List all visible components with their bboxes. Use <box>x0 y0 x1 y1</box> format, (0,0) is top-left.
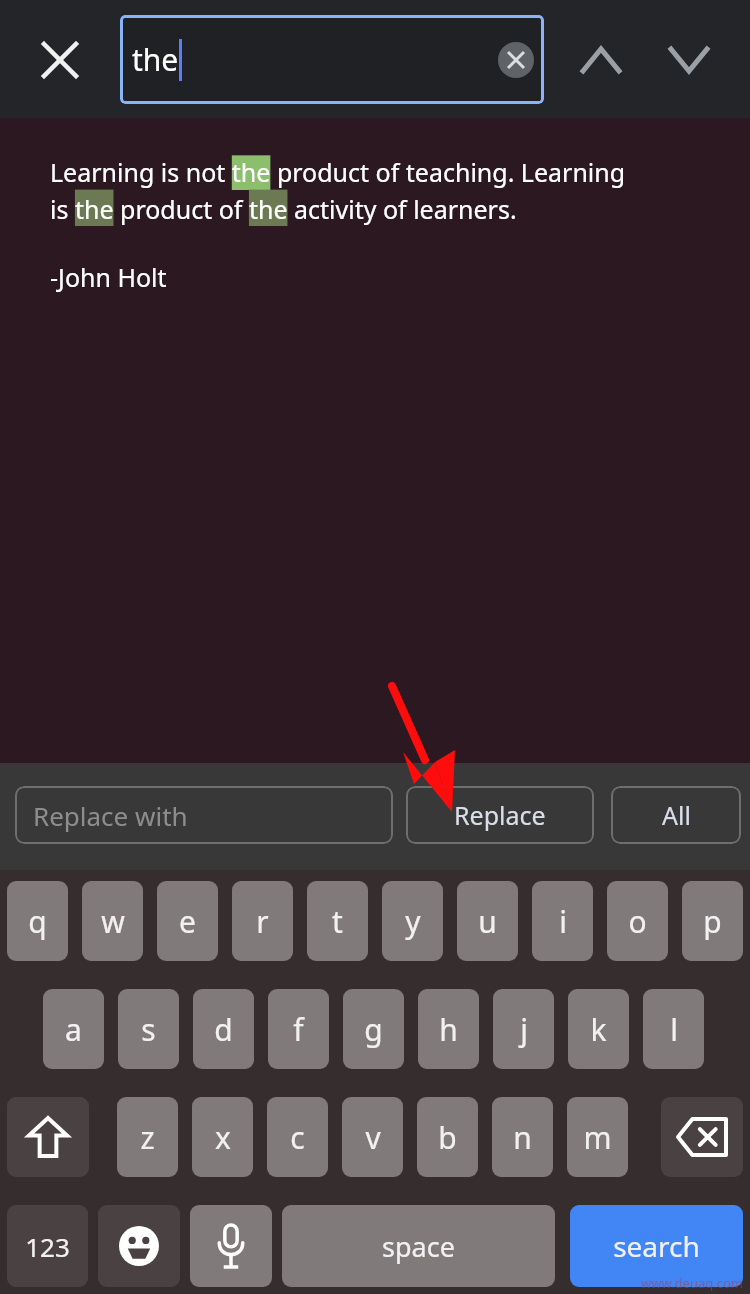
button[interactable]: j <box>493 989 554 1069</box>
staticText: l <box>670 1009 678 1050</box>
staticText: s <box>141 1009 156 1050</box>
button[interactable]: d <box>193 989 254 1069</box>
button[interactable]: Voice input <box>190 1205 272 1287</box>
button[interactable]: Previous match <box>571 30 631 90</box>
button[interactable]: q <box>7 881 68 961</box>
button[interactable]: m <box>567 1097 628 1177</box>
button[interactable]: p <box>682 881 743 961</box>
staticText: a <box>65 1009 82 1050</box>
staticText: r <box>256 901 269 942</box>
staticText: 123 <box>25 1229 70 1264</box>
button[interactable]: x <box>192 1097 253 1177</box>
staticText: All <box>662 798 691 832</box>
staticText: search <box>613 1227 700 1265</box>
staticText: v <box>365 1117 381 1158</box>
button[interactable]: u <box>457 881 518 961</box>
button[interactable]: i <box>532 881 593 961</box>
staticText: j <box>520 1009 528 1050</box>
button[interactable]: Emoji <box>98 1205 180 1287</box>
button[interactable]: o <box>607 881 668 961</box>
button[interactable]: h <box>418 989 479 1069</box>
button[interactable]: c <box>267 1097 328 1177</box>
staticText: d <box>214 1009 233 1050</box>
button[interactable]: v <box>342 1097 403 1177</box>
staticText: i <box>559 901 567 942</box>
button[interactable]: the <box>120 15 544 104</box>
button[interactable]: Next match <box>659 30 719 90</box>
button[interactable]: b <box>417 1097 478 1177</box>
button[interactable]: y <box>382 881 443 961</box>
button[interactable]: n <box>492 1097 553 1177</box>
button[interactable]: e <box>157 881 218 961</box>
staticText: p <box>703 901 722 942</box>
button[interactable]: Replace with <box>15 786 393 844</box>
staticText: e <box>179 901 196 942</box>
button[interactable]: Shift <box>7 1097 89 1177</box>
staticText: space <box>382 1228 455 1265</box>
button[interactable]: space <box>282 1205 555 1287</box>
staticText: k <box>590 1009 607 1050</box>
staticText: m <box>583 1117 612 1158</box>
staticText: h <box>439 1009 458 1050</box>
staticText: g <box>364 1009 383 1050</box>
staticText: x <box>215 1117 231 1158</box>
button[interactable]: r <box>232 881 293 961</box>
staticText: the <box>132 39 179 80</box>
staticText: n <box>513 1117 532 1158</box>
staticText: z <box>140 1117 155 1158</box>
button[interactable]: search <box>570 1205 743 1287</box>
button[interactable]: z <box>117 1097 178 1177</box>
staticText: Replace with <box>33 798 188 833</box>
staticText: w <box>101 901 125 942</box>
button[interactable]: f <box>268 989 329 1069</box>
staticText: f <box>293 1009 304 1050</box>
button[interactable]: w <box>82 881 143 961</box>
staticText: www.deuaq.com <box>641 1274 744 1292</box>
staticText: -John Holt <box>50 260 167 294</box>
button[interactable]: Close <box>30 30 90 90</box>
staticText: Learning is not the product of teaching.… <box>50 155 650 226</box>
staticText: y <box>405 901 421 942</box>
button[interactable]: Replace <box>406 786 594 844</box>
button[interactable]: All <box>611 786 741 844</box>
staticText: t <box>332 901 343 942</box>
button[interactable]: l <box>643 989 704 1069</box>
staticText: q <box>28 901 47 942</box>
staticText: Replace <box>454 798 546 832</box>
button[interactable]: g <box>343 989 404 1069</box>
button[interactable]: Clear query <box>498 42 534 78</box>
button[interactable]: 123 <box>7 1205 88 1287</box>
staticText: u <box>478 901 497 942</box>
button[interactable]: s <box>118 989 179 1069</box>
button[interactable]: Backspace <box>661 1097 743 1177</box>
staticText: b <box>438 1117 457 1158</box>
staticText: o <box>628 901 647 942</box>
button[interactable]: t <box>307 881 368 961</box>
button[interactable]: a <box>43 989 104 1069</box>
button[interactable]: k <box>568 989 629 1069</box>
staticText: c <box>290 1117 305 1158</box>
